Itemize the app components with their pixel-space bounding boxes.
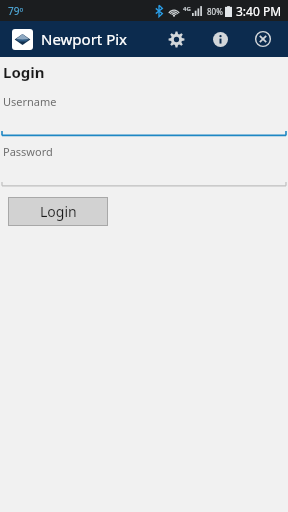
staticText: Login xyxy=(40,202,77,221)
button[interactable] xyxy=(0,182,288,187)
button[interactable] xyxy=(0,131,288,137)
staticText: 79º xyxy=(8,4,24,18)
button[interactable]: Close xyxy=(246,22,280,56)
staticText: Newport Pix xyxy=(41,29,128,49)
staticText: 3:40 PM xyxy=(236,3,282,19)
staticText: Login xyxy=(3,62,45,82)
staticText: 80% xyxy=(207,6,223,17)
button[interactable]: Info xyxy=(203,22,237,56)
staticText: 4G xyxy=(183,5,191,13)
staticText: Password xyxy=(3,144,53,159)
button[interactable]: Login xyxy=(8,197,108,226)
button[interactable]: Settings xyxy=(158,21,194,57)
staticText: Username xyxy=(3,94,57,109)
